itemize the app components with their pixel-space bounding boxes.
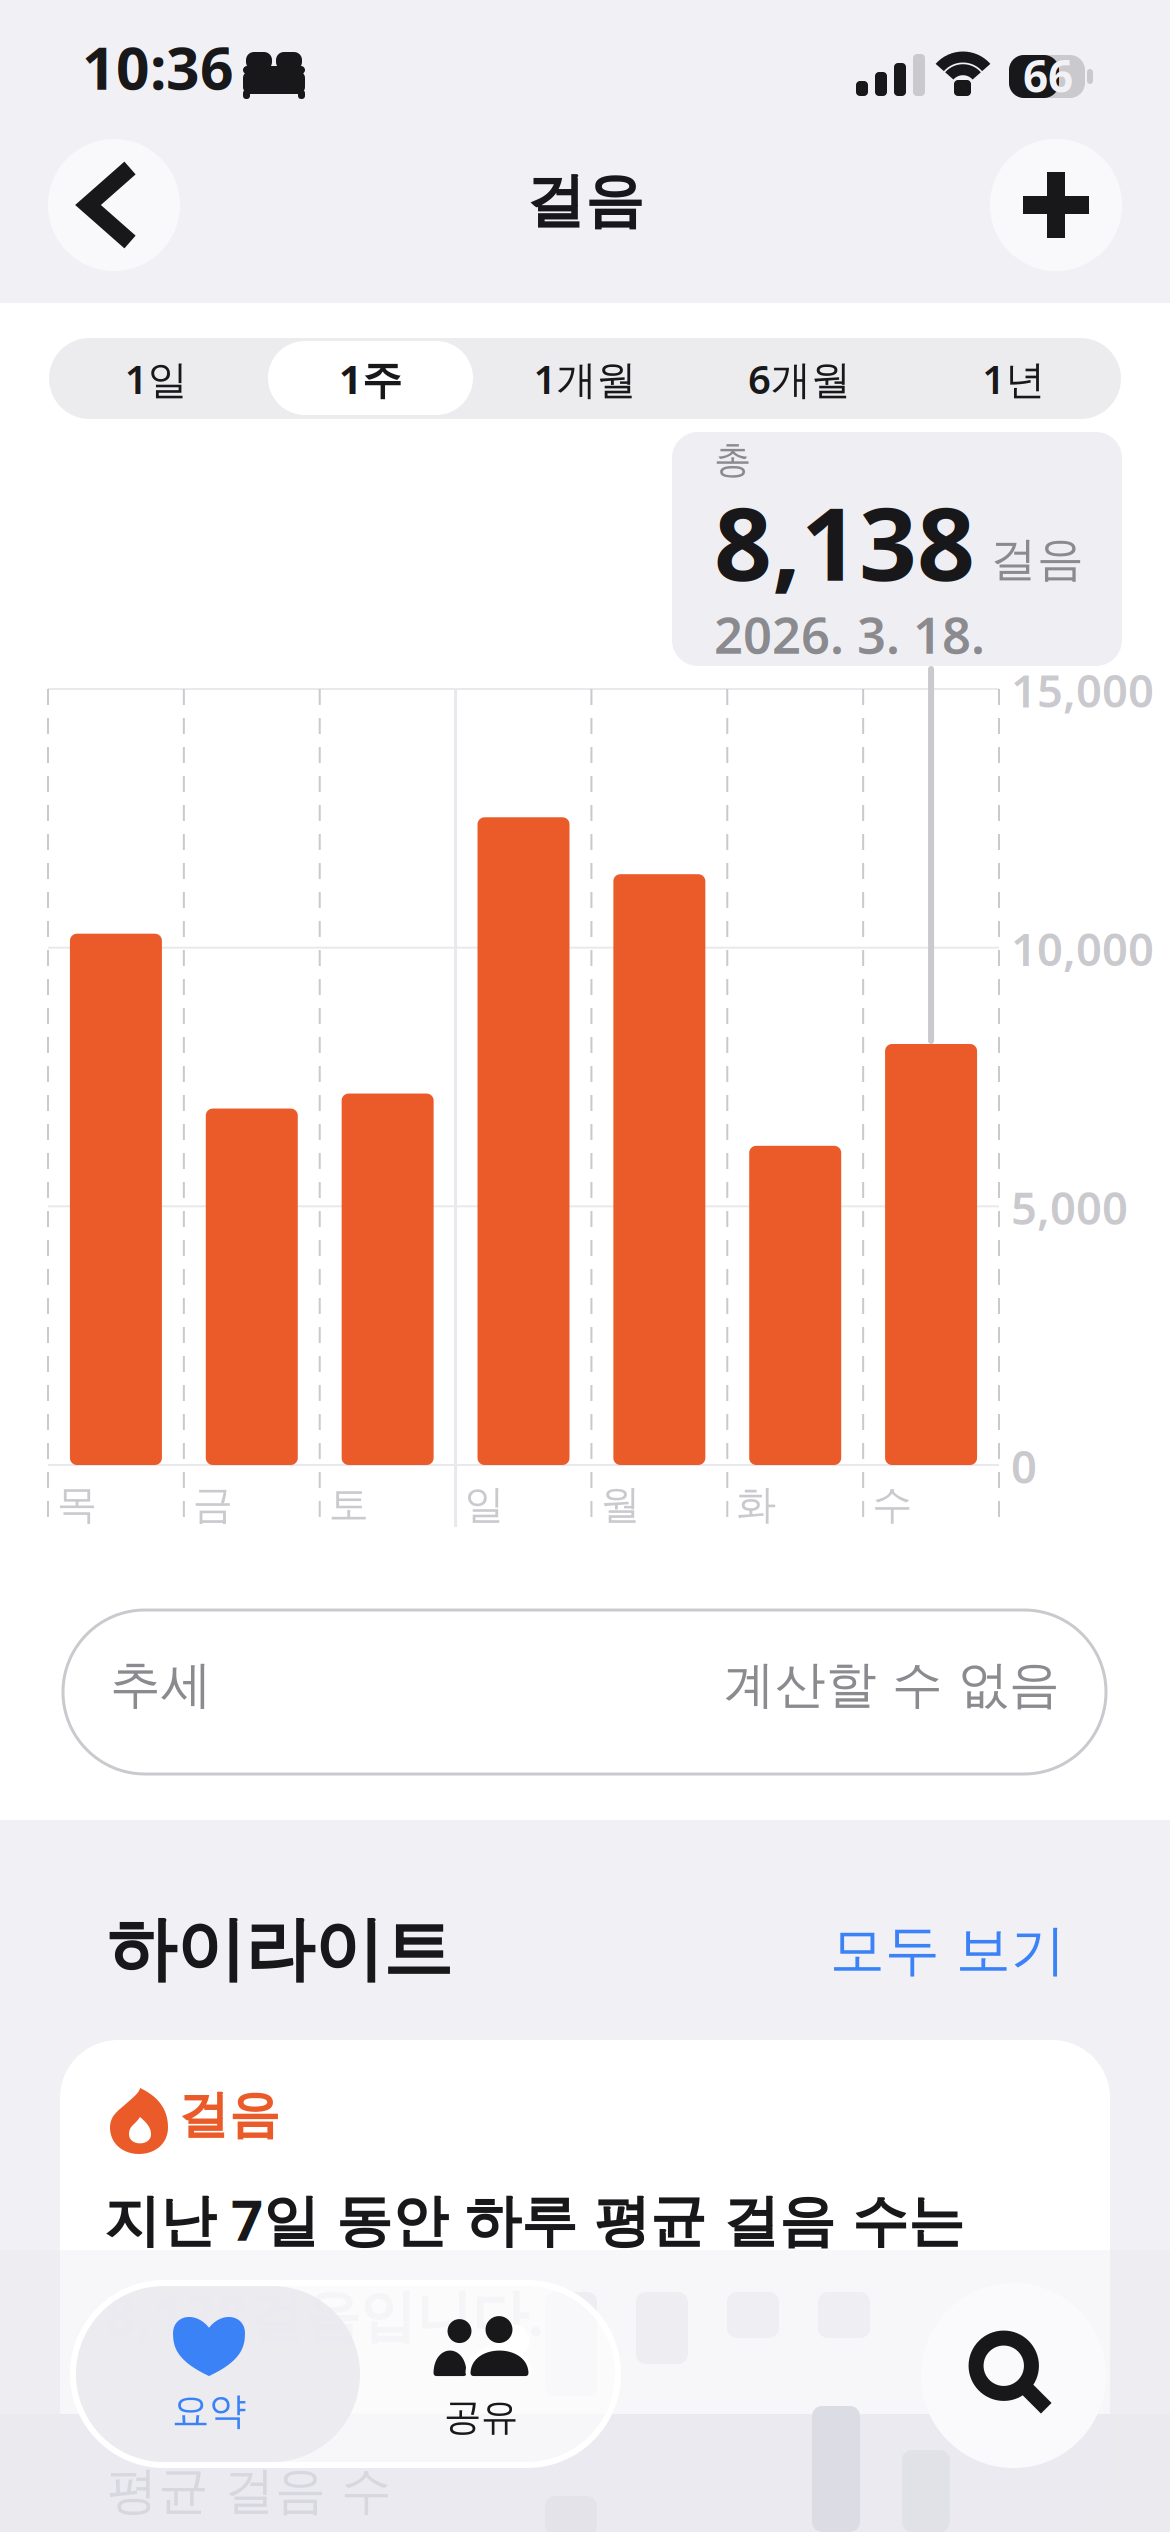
staticText: 10,000 (1011, 918, 1154, 979)
staticText: 추세 (110, 1654, 212, 1716)
staticText: 모두 보기 (830, 1917, 1066, 1984)
button[interactable]: 1개월 (478, 338, 692, 419)
staticText: 걸음 (990, 531, 1084, 588)
staticText: 1개월 (533, 352, 636, 405)
button[interactable]: 요약 (73, 2283, 345, 2465)
staticText: 목 (57, 1480, 97, 1529)
staticText: 10:36 (82, 28, 234, 106)
staticText: 화 (736, 1480, 776, 1529)
staticText: 8,138 (714, 474, 975, 609)
staticText: 1주 (339, 352, 402, 405)
button[interactable]: 1년 (907, 338, 1121, 419)
staticText: 8,138걸음입니다. (104, 2277, 544, 2351)
staticText: 수 (872, 1480, 912, 1529)
button[interactable]: 1주 (263, 338, 478, 419)
staticText: 월 (600, 1480, 640, 1529)
staticText: 지난 7일 동안 하루 평균 걸음 수는 (104, 2182, 964, 2256)
button[interactable]: 6개월 (692, 338, 907, 419)
staticText: 토 (329, 1480, 369, 1529)
staticText: 걸음 (526, 165, 644, 237)
button[interactable]: 1일 (49, 338, 263, 419)
staticText: 하이라이트 (107, 1907, 452, 1992)
staticText: 15,000 (1011, 660, 1154, 720)
staticText: 1년 (982, 352, 1045, 405)
staticText: 일 (465, 1480, 505, 1529)
button[interactable]: 뒤로 (48, 139, 180, 271)
staticText: 총 (714, 437, 751, 483)
staticText: 5,000 (1011, 1177, 1128, 1237)
staticText: 평균 걸음 수 (107, 2460, 392, 2522)
staticText: 금 (193, 1480, 233, 1529)
button[interactable]: 추가 (990, 139, 1122, 271)
button[interactable]: 공유 (345, 2283, 617, 2465)
staticText: 걸음 (178, 2084, 280, 2146)
staticText: 2026. 3. 18. (714, 600, 985, 668)
staticText: 0 (1011, 1436, 1037, 1496)
staticText: 1일 (125, 352, 188, 405)
staticText: 6개월 (748, 352, 851, 405)
staticText: 요약 (172, 2388, 246, 2434)
staticText: 공유 (444, 2394, 518, 2440)
staticText: 66 (1023, 46, 1073, 105)
button[interactable]: 모두 보기 (830, 1917, 1066, 1984)
button[interactable]: 검색 (921, 2283, 1106, 2468)
staticText: 계산할 수 없음 (724, 1654, 1060, 1716)
